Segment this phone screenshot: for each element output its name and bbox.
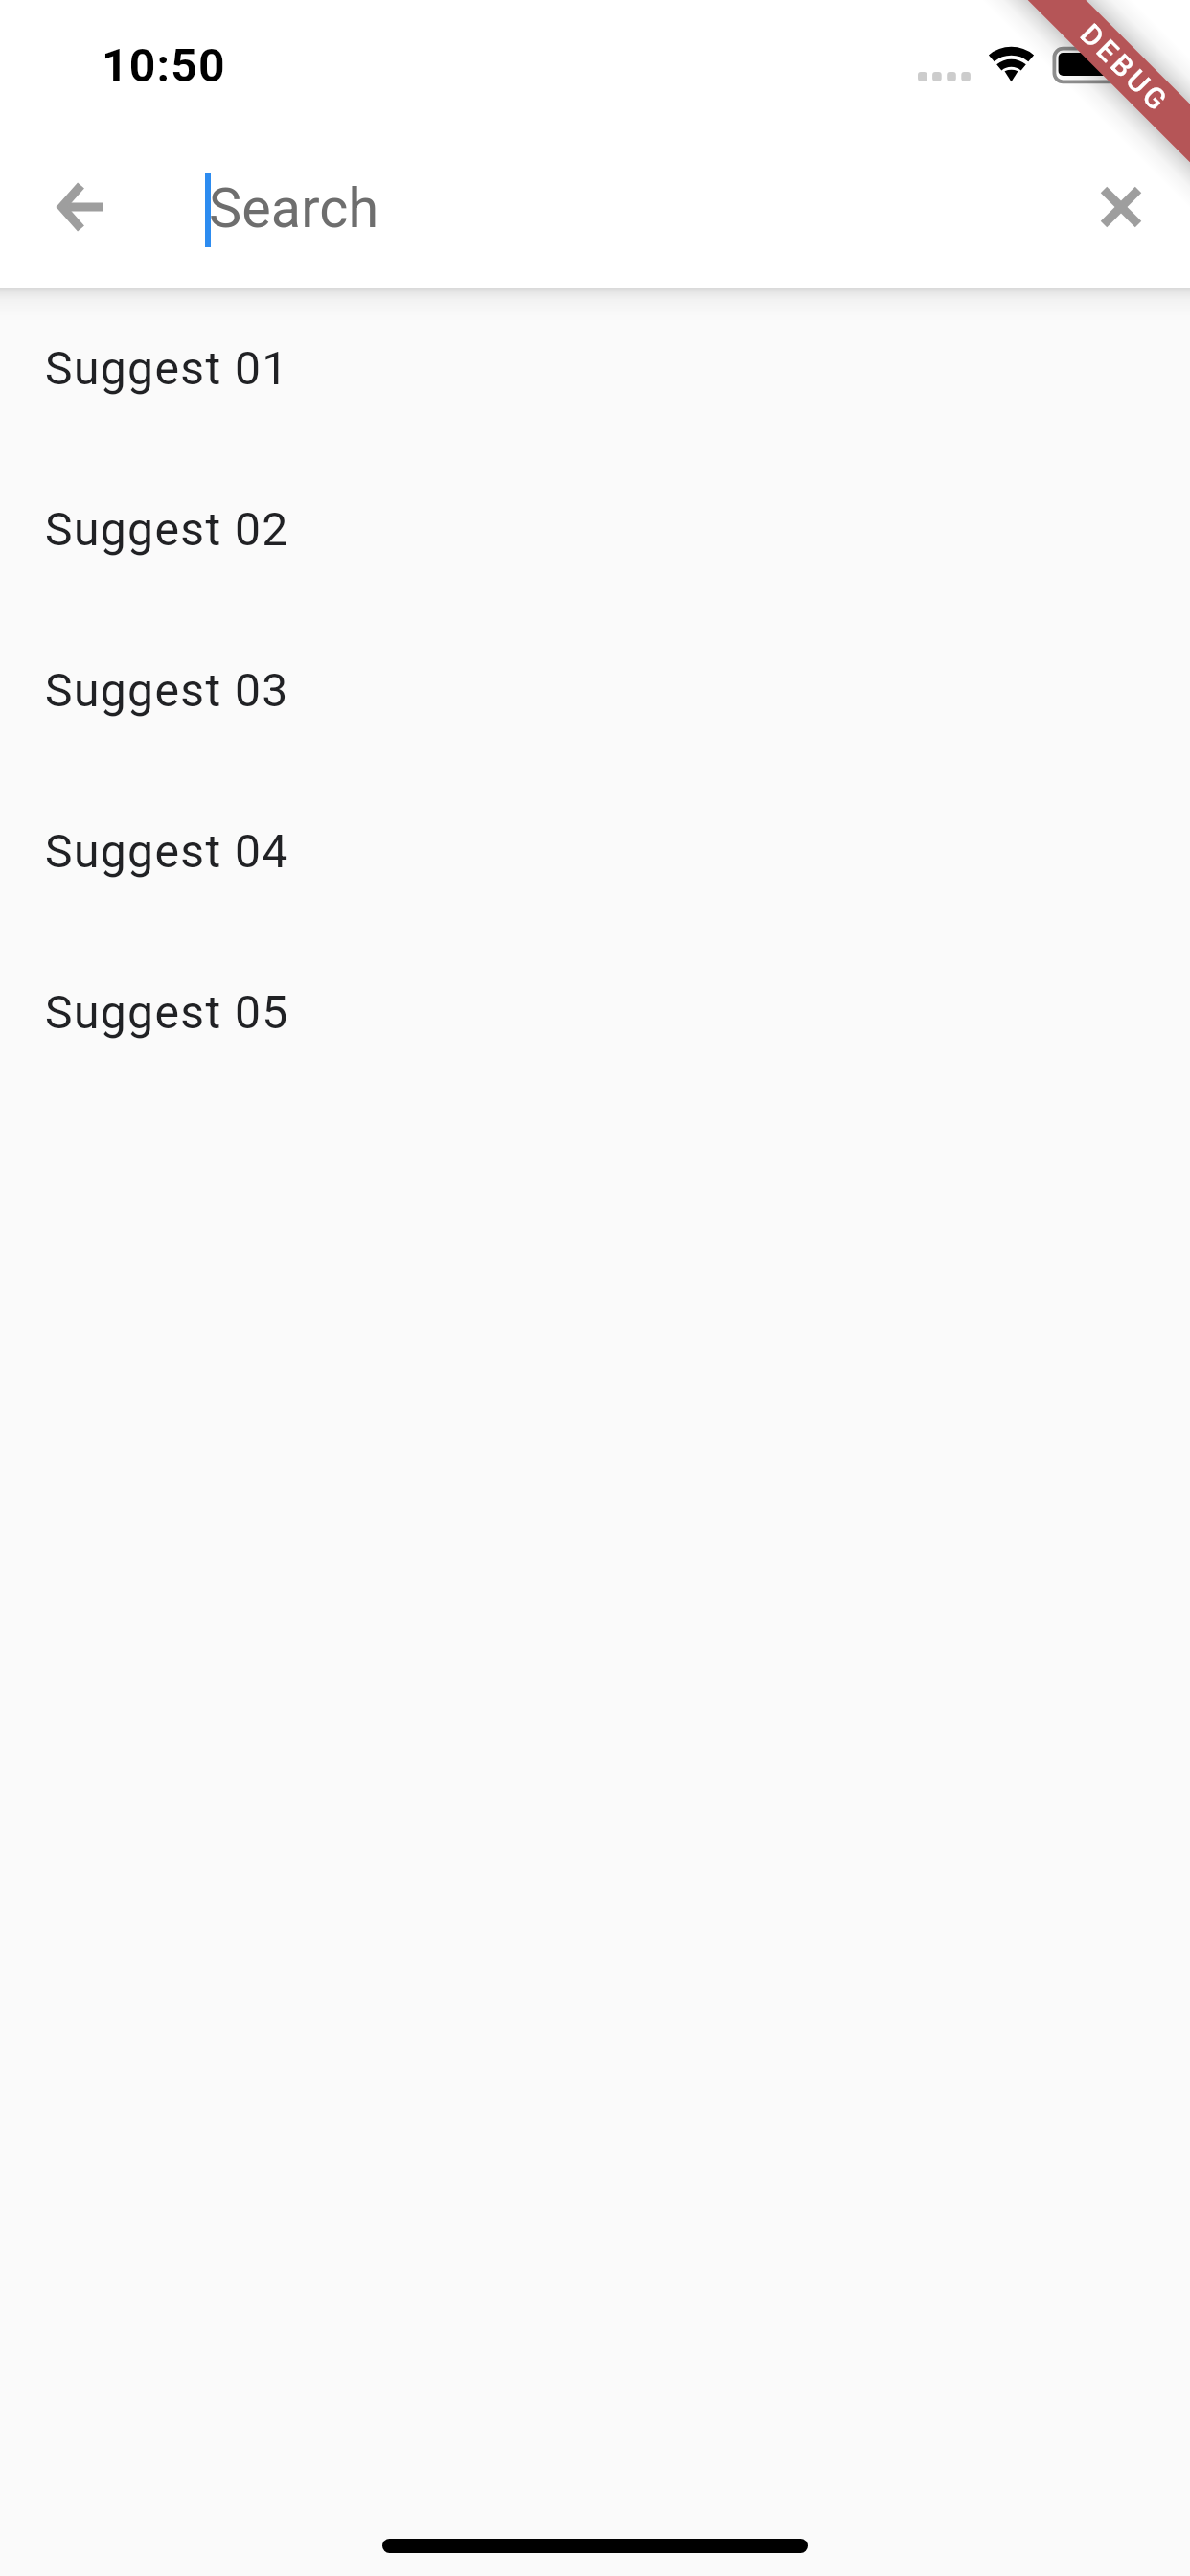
staticText: Suggest 01 bbox=[45, 341, 289, 395]
button[interactable]: Back bbox=[34, 161, 126, 253]
button[interactable]: Suggest 03 bbox=[0, 609, 1190, 770]
staticText: Search bbox=[209, 176, 379, 241]
staticText: Suggest 04 bbox=[45, 824, 289, 878]
button[interactable]: Suggest 05 bbox=[0, 931, 1190, 1092]
staticText: Suggest 05 bbox=[45, 985, 289, 1039]
button[interactable]: Suggest 04 bbox=[0, 770, 1190, 931]
staticText: Suggest 02 bbox=[45, 502, 289, 556]
button[interactable]: Suggest 01 bbox=[0, 287, 1190, 448]
button[interactable]: Suggest 02 bbox=[0, 448, 1190, 609]
button[interactable]: Clear search bbox=[1075, 161, 1167, 253]
staticText: 10:50 bbox=[102, 38, 226, 92]
staticText: Suggest 03 bbox=[45, 663, 289, 717]
